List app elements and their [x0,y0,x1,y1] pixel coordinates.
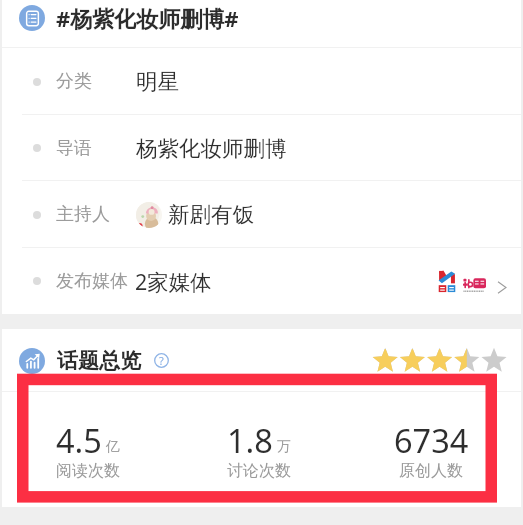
button[interactable]: 6734 [345,418,517,482]
staticText: 6734 [394,418,469,462]
button[interactable]: 导语 [2,115,521,181]
staticText: 分类 [56,70,92,93]
staticText: 亿 [106,438,120,456]
staticText: 杨紫化妆师删博 [136,135,287,162]
button[interactable]: 分类 [2,48,521,115]
button[interactable]: #杨紫化妆师删博# [2,0,521,48]
staticText: 话题总览 [57,348,141,374]
staticText: 讨论次数 [227,461,291,481]
staticText: 万 [277,438,291,456]
staticText: 主持人 [56,203,110,226]
button[interactable]: 1.8 [173,418,345,482]
staticText: 原创人数 [399,461,463,481]
staticText: 1.8 [227,418,273,462]
staticText: 发布媒体 [56,270,128,293]
staticText: 2家媒体 [135,267,212,296]
button[interactable]: 主持人 [2,181,521,248]
staticText: 明星 [136,68,179,95]
staticText: 导语 [56,137,92,160]
button[interactable]: Help [154,353,169,368]
other: More media [498,280,506,295]
staticText: 4.5 [56,418,102,462]
staticText: 阅读次数 [56,461,120,481]
staticText: #杨紫化妆师删博# [56,3,239,33]
button[interactable]: 话题总览 [2,329,521,392]
button[interactable]: 4.5 [2,418,173,482]
staticText: ? [159,353,164,368]
button[interactable]: 发布媒体 [2,248,521,314]
staticText: 新剧有饭 [168,201,254,228]
